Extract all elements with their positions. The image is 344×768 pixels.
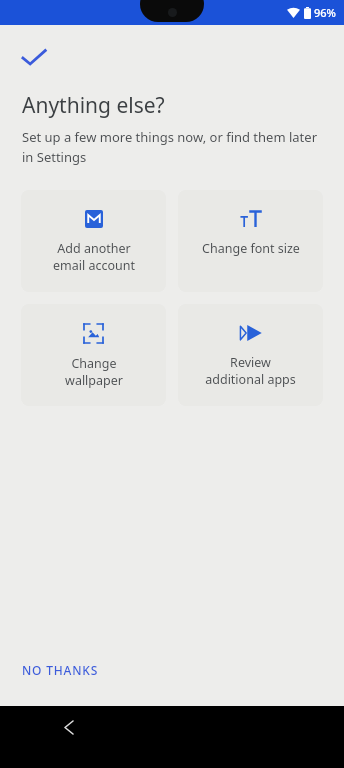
staticText: Change wallpaper: [65, 355, 123, 389]
staticText: Add another email account: [53, 240, 135, 274]
staticText: Anything else?: [22, 91, 165, 120]
button[interactable]: Back: [54, 712, 84, 742]
staticText: Change font size: [202, 240, 300, 257]
button[interactable]: Add another email account: [21, 190, 166, 292]
staticText: Review additional apps: [205, 354, 296, 388]
button[interactable]: Change wallpaper: [21, 304, 166, 406]
button[interactable]: Change font size: [178, 190, 323, 292]
button[interactable]: NO THANKS: [10, 654, 111, 686]
button[interactable]: Review additional apps: [178, 304, 323, 406]
staticText: NO THANKS: [22, 662, 99, 678]
staticText: 96%: [314, 5, 336, 20]
staticText: Set up a few more things now, or find th…: [22, 128, 324, 166]
